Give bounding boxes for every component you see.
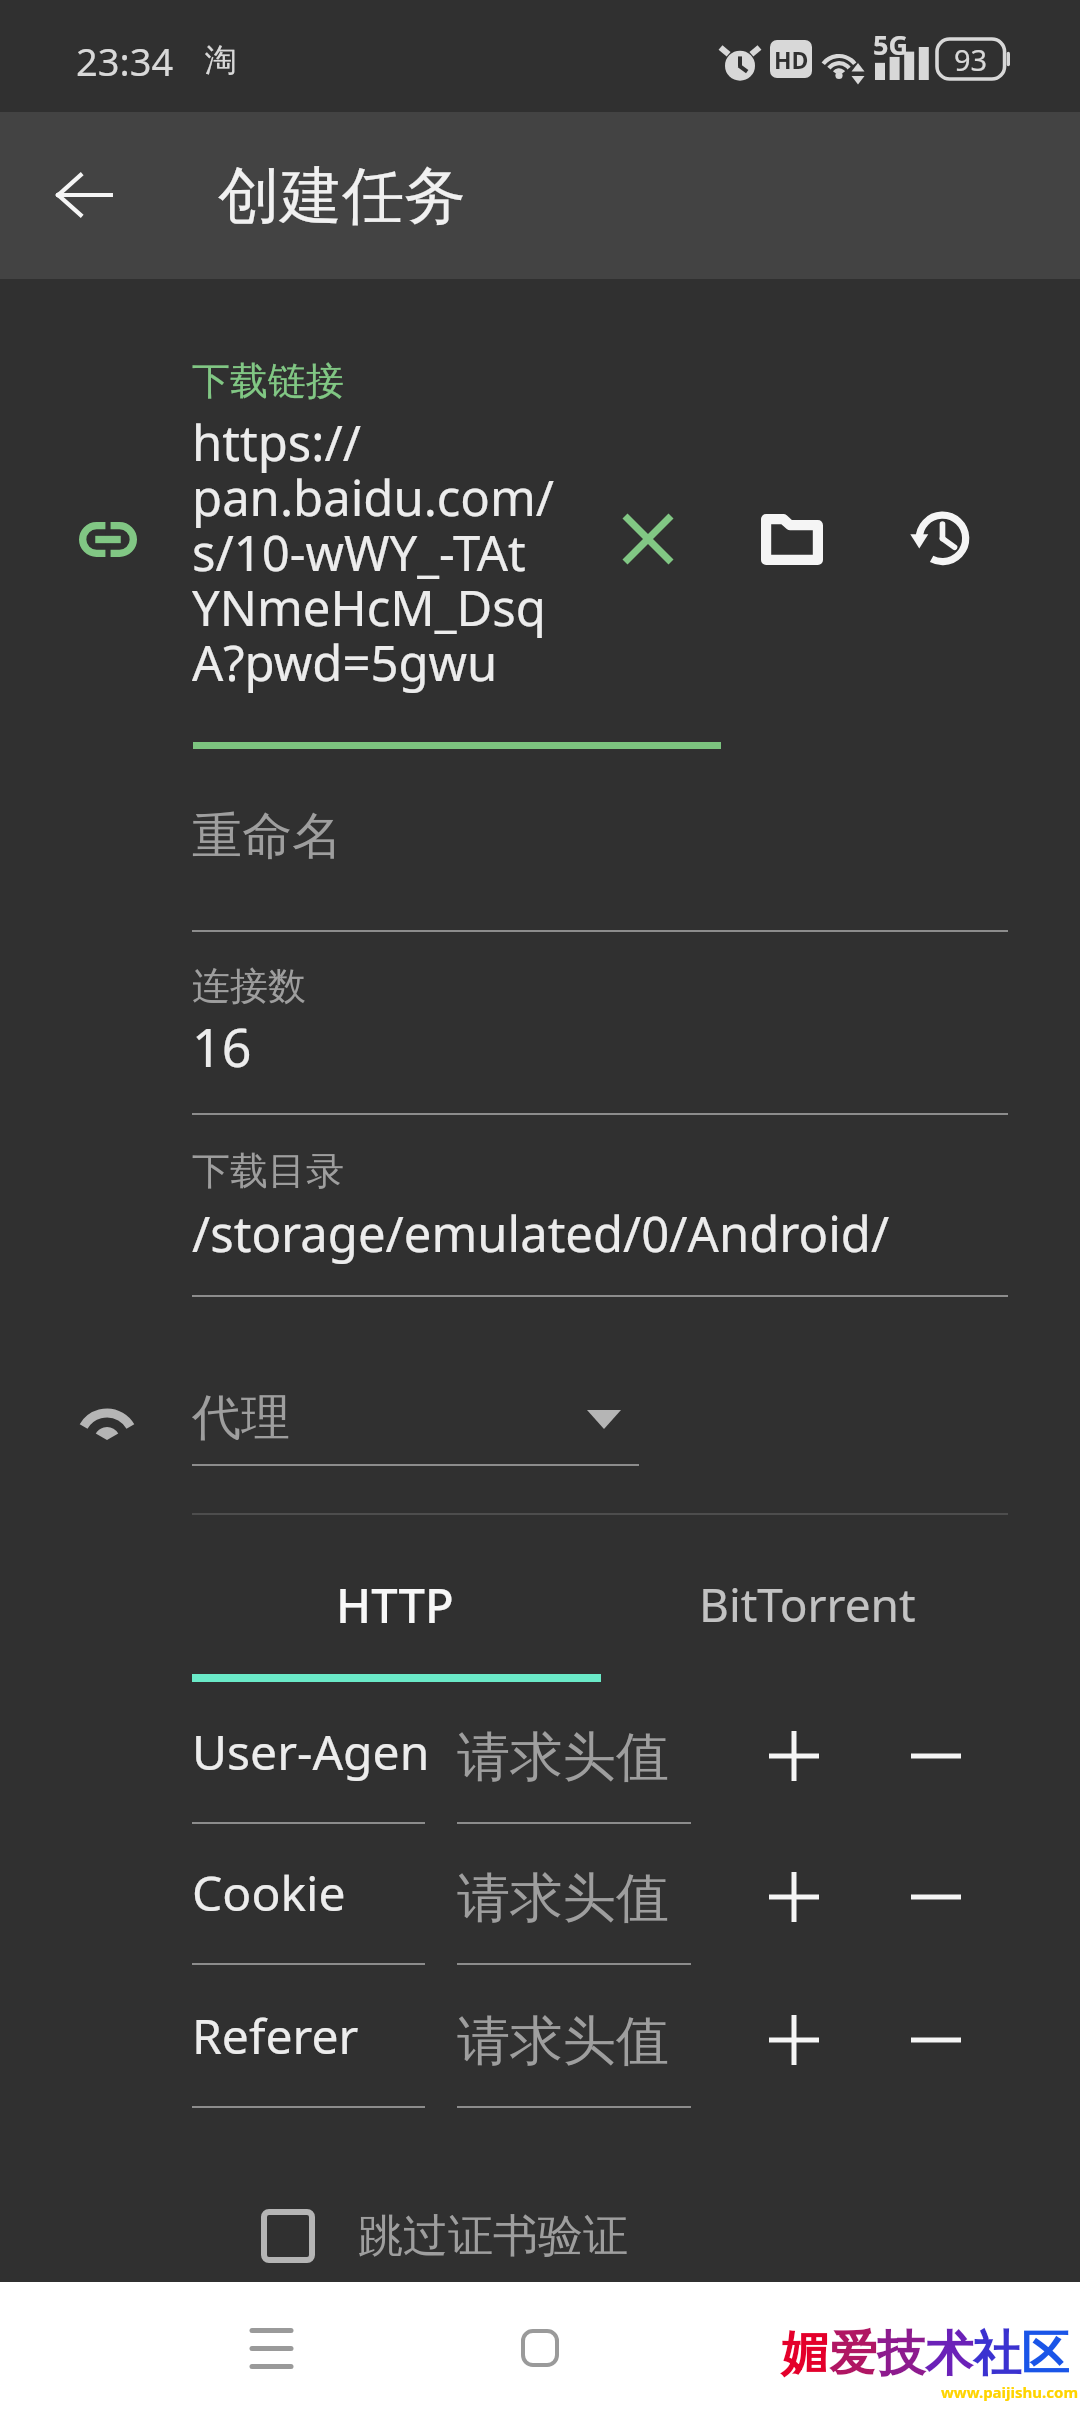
staticText: 23:34 — [76, 35, 174, 87]
staticText: HD — [774, 44, 809, 75]
staticText: 下载目录 — [192, 1147, 344, 1195]
staticText: www.paijishu.com — [941, 2382, 1079, 2402]
staticText: User-Agen — [192, 1719, 430, 1784]
staticText: /storage/emulated/0/Android/data/ — [192, 1200, 1008, 1267]
button[interactable]: 下载目录 — [192, 1135, 1008, 1297]
staticText: 请求头值 — [457, 1724, 669, 1791]
staticText: 爱 — [829, 2324, 877, 2384]
button[interactable]: Remove header — [890, 1994, 982, 2086]
staticText: BitTorrent — [699, 1573, 916, 1636]
staticText: 社 — [973, 2324, 1021, 2384]
staticText: 技 — [877, 2324, 925, 2384]
button[interactable]: Remove header — [890, 1710, 982, 1802]
staticText: 区 — [1021, 2324, 1069, 2384]
staticText: 连接数 — [192, 962, 306, 1010]
staticText: 请求头值 — [457, 2008, 669, 2075]
button[interactable]: Add header — [748, 1994, 840, 2086]
staticText: 淘 — [205, 40, 237, 80]
staticText: 创建任务 — [218, 157, 466, 235]
button[interactable]: Add header — [748, 1710, 840, 1802]
button[interactable]: Select proxy — [568, 1384, 640, 1454]
button[interactable]: 跳过证书验证 — [261, 2200, 628, 2272]
staticText: 请求头值 — [457, 1865, 669, 1932]
button[interactable]: Choose folder — [742, 489, 842, 589]
staticText: 93 — [954, 40, 988, 79]
staticText: Referer — [192, 2003, 359, 2068]
staticText: https:// pan.baidu.com/ s/10-wWY_-TAt YN… — [192, 409, 722, 696]
button[interactable]: HTTP — [189, 1552, 601, 1657]
button[interactable]: Home — [475, 2282, 605, 2414]
button[interactable]: 重命名 — [192, 790, 1008, 932]
button[interactable]: Recents — [206, 2282, 336, 2414]
button[interactable]: 下载链接 — [192, 350, 722, 750]
staticText: 重命名 — [192, 805, 342, 868]
staticText: 术 — [925, 2324, 973, 2384]
button[interactable]: Link — [63, 494, 153, 584]
button[interactable]: Add header — [748, 1851, 840, 1943]
staticText: 跳过证书验证 — [358, 2208, 628, 2265]
staticText: 代理 — [192, 1387, 290, 1449]
button[interactable]: Proxy — [61, 1372, 153, 1464]
button[interactable]: 连接数 — [192, 950, 1008, 1115]
button[interactable]: History — [889, 489, 989, 589]
staticText: 5G — [873, 26, 908, 63]
button[interactable]: Back — [29, 140, 139, 250]
staticText: HTTP — [336, 1573, 454, 1637]
staticText: 16 — [192, 1011, 252, 1082]
button[interactable]: BitTorrent — [601, 1552, 1013, 1657]
staticText: 下载链接 — [192, 357, 344, 405]
staticText: Cookie — [192, 1860, 346, 1925]
button[interactable]: Remove header — [890, 1851, 982, 1943]
staticText: 媚 — [781, 2324, 829, 2384]
button[interactable]: Clear — [598, 489, 698, 589]
